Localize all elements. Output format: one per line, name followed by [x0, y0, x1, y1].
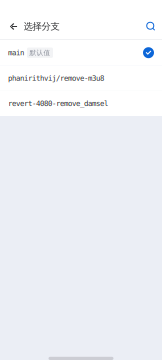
button[interactable]: Back [5, 14, 21, 38]
button[interactable]: revert-4080-remove_damsel [0, 91, 162, 116]
staticText: phanirithvij/remove-m3u8 [8, 74, 104, 82]
staticText: 默认值 [29, 48, 50, 57]
staticText: 选择分支 [23, 21, 59, 32]
staticText: revert-4080-remove_damsel [8, 99, 108, 108]
button[interactable]: Search [143, 14, 159, 38]
staticText: main [8, 48, 24, 57]
button[interactable]: main [0, 40, 162, 65]
button[interactable]: phanirithvij/remove-m3u8 [0, 65, 162, 91]
